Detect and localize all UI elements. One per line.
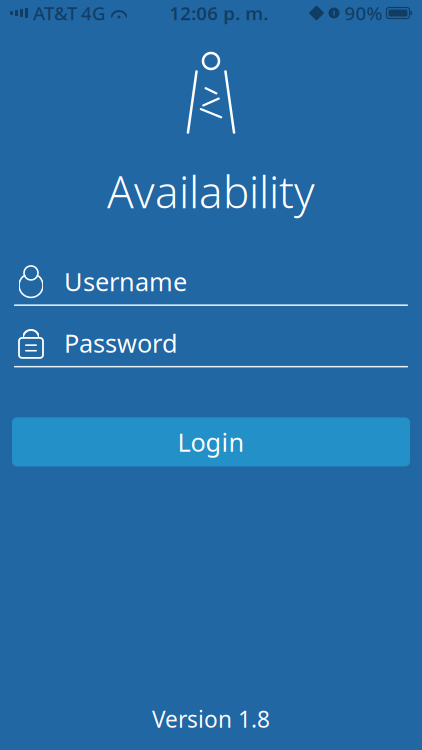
- staticText: Login: [177, 425, 244, 459]
- staticText: Username: [64, 265, 187, 298]
- staticText: 4G: [81, 1, 106, 25]
- staticText: 12:06 p. m.: [169, 1, 268, 25]
- button[interactable]: Login: [12, 417, 410, 466]
- staticText: Password: [64, 326, 178, 360]
- staticText: Version 1.8: [152, 704, 270, 734]
- staticText: Availability: [107, 162, 315, 220]
- staticText: AT&T: [33, 1, 77, 25]
- staticText: 90%: [344, 1, 382, 25]
